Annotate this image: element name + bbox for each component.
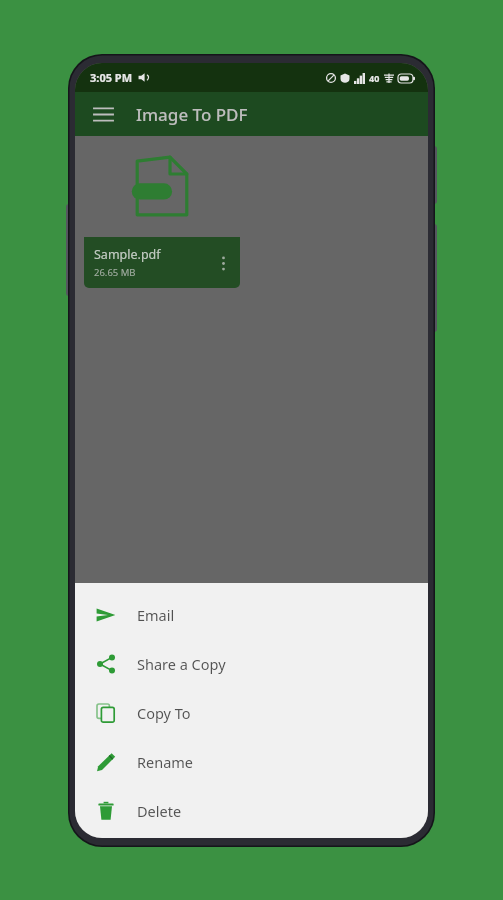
button[interactable]: Copy To: [75, 688, 428, 737]
staticText: 3:05 PM: [90, 70, 133, 85]
staticText: Rename: [137, 752, 194, 772]
staticText: 40: [369, 72, 380, 84]
staticText: Share a Copy: [137, 654, 226, 674]
button[interactable]: Delete: [75, 786, 428, 835]
button[interactable]: Share a Copy: [75, 639, 428, 688]
staticText: Delete: [137, 801, 182, 821]
staticText: Image To PDF: [136, 103, 248, 126]
staticText: Sample.pdf: [94, 246, 161, 263]
staticText: Copy To: [137, 703, 191, 723]
button[interactable]: More options: [208, 248, 238, 278]
staticText: 26.65 MB: [94, 266, 136, 279]
button[interactable]: Sample.pdf: [84, 138, 240, 288]
button[interactable]: Email: [75, 590, 428, 639]
button[interactable]: Open navigation menu: [83, 94, 123, 134]
staticText: Email: [137, 605, 175, 625]
button[interactable]: Rename: [75, 737, 428, 786]
